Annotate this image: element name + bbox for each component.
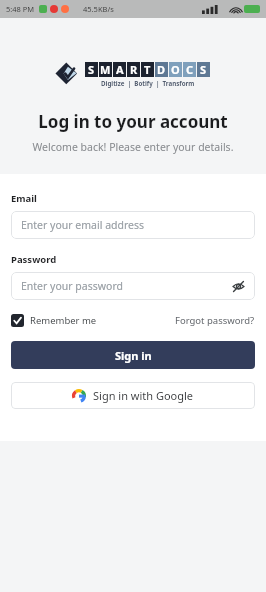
staticText: D	[157, 62, 166, 77]
staticText: Forgot password?	[175, 314, 255, 327]
button[interactable]: Sign in with Google	[11, 382, 255, 409]
button[interactable]: Remember me	[11, 314, 97, 327]
staticText: 5:48 PM	[6, 4, 35, 14]
staticText: Log in to your account	[0, 110, 266, 133]
staticText: Sign in with Google	[93, 388, 194, 403]
button[interactable]: Enter your password	[11, 272, 255, 300]
staticText: Password	[11, 253, 57, 266]
staticText: M	[100, 62, 111, 77]
staticText: S	[88, 62, 95, 77]
button[interactable]: Enter your email address	[11, 211, 255, 239]
other: Show password	[232, 280, 245, 293]
staticText: Email	[11, 192, 37, 205]
button[interactable]: Sign in	[11, 341, 255, 369]
button[interactable]: Forgot password?	[175, 314, 255, 327]
staticText: Welcome back! Please enter your details.	[0, 140, 266, 154]
staticText: T	[144, 62, 151, 77]
staticText: Enter your password	[21, 279, 123, 293]
staticText: S	[200, 62, 207, 77]
staticText: A	[116, 62, 124, 77]
staticText: O	[171, 62, 180, 77]
staticText: Enter your email address	[21, 218, 145, 232]
staticText: Digitize | Botify | Transform	[101, 79, 195, 87]
staticText: Sign in	[115, 348, 152, 363]
staticText: R	[130, 62, 138, 77]
staticText: C	[186, 62, 194, 77]
staticText: 45.5KB/s	[83, 4, 114, 14]
staticText: Remember me	[30, 314, 97, 327]
